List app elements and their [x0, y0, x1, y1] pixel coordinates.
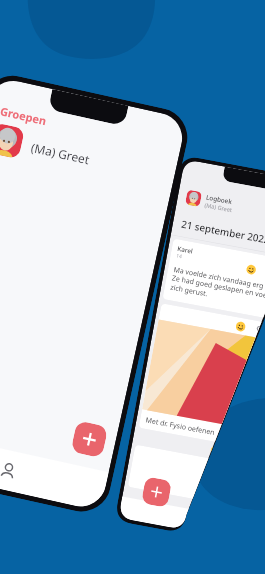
- staticText: Logboek: [205, 192, 233, 206]
- button[interactable]: Karel: [162, 238, 265, 322]
- staticText: Met dr. Fysio oefenen: [145, 415, 216, 437]
- staticText: Ma voelde zich vandaag erg goed! Ze had …: [169, 264, 265, 312]
- staticText: 14: [175, 252, 183, 260]
- button[interactable]: Profile: [0, 461, 18, 481]
- button[interactable]: Add group: [70, 420, 108, 458]
- button[interactable]: [128, 444, 259, 510]
- staticText: (Ma) Greet: [204, 201, 233, 214]
- button[interactable]: Pin: [139, 303, 265, 451]
- button[interactable]: (Ma) Greet: [0, 117, 178, 196]
- staticText: Karel: [177, 244, 194, 255]
- staticText: Groepen: [0, 103, 48, 128]
- staticText: 21 september 2022: [180, 217, 265, 247]
- button[interactable]: Logboek: [177, 187, 265, 228]
- button[interactable]: Add entry: [141, 476, 172, 508]
- button[interactable]: Pin: [254, 325, 264, 335]
- staticText: (Ma) Greet: [30, 139, 92, 168]
